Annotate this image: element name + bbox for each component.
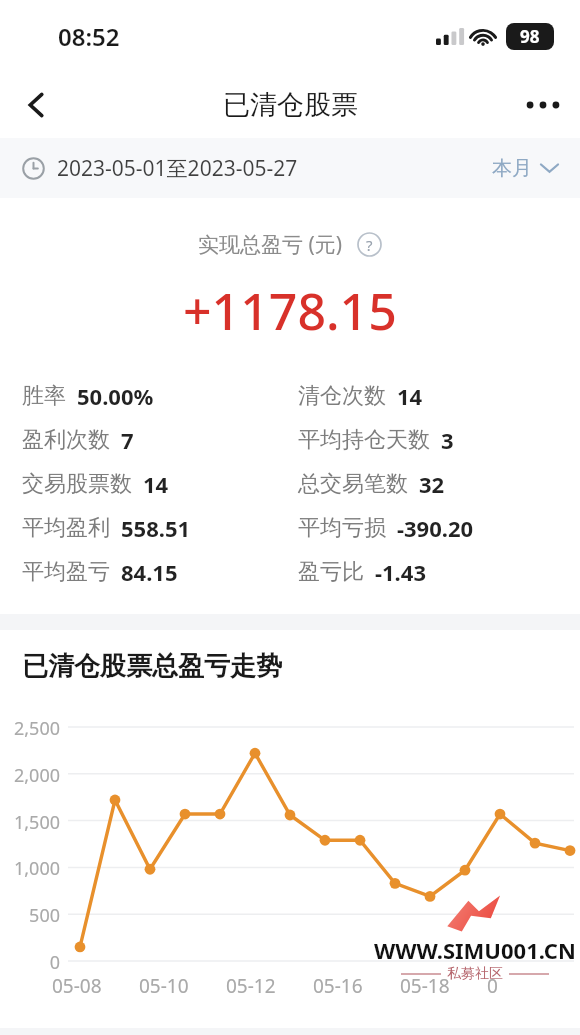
staticText: 已清仓股票 [223,88,358,122]
button[interactable]: Help [356,231,383,258]
staticText: 05-18 [400,973,450,999]
staticText: 05-08 [52,973,102,999]
staticText: WWW.SIMU001.CN [374,935,576,965]
staticText: 14 [143,469,169,499]
staticText: 平均持仓天数 [298,426,430,454]
staticText: 32 [419,469,445,499]
staticText: 清仓次数 [298,382,386,410]
staticText: 本月 [492,156,532,181]
button[interactable]: More options [518,80,568,130]
staticText: 2023-05-01至2023-05-27 [57,154,298,183]
staticText: 50.00% [77,381,154,411]
staticText: 14 [397,381,423,411]
staticText: 2,000 [8,763,60,788]
staticText: 98 [520,25,540,48]
staticText: 已清仓股票总盈亏走势 [22,650,282,683]
staticText: 0 [487,973,498,999]
staticText: 08:52 [58,20,120,53]
button[interactable]: Back [12,80,62,130]
staticText: 05-16 [313,973,363,999]
staticText: 交易股票数 [22,470,132,498]
staticText: 平均盈利 [22,514,110,542]
button[interactable]: 2023-05-01至2023-05-27 [0,138,580,198]
staticText: 盈亏比 [298,558,364,586]
staticText: 3 [441,425,454,455]
staticText: 胜率 [22,382,66,410]
staticText: 实现总盈亏 (元) [198,230,343,259]
staticText: 0 [8,950,60,975]
staticText: 500 [8,903,60,928]
staticText: 盈利次数 [22,426,110,454]
staticText: -1.43 [375,557,426,587]
staticText: 84.15 [121,557,178,587]
staticText: 1,500 [8,810,60,835]
staticText: 私募社区 [447,965,503,983]
staticText: 1,000 [8,856,60,881]
staticText: 05-12 [226,973,276,999]
staticText: -390.20 [397,513,474,543]
staticText: 平均盈亏 [22,558,110,586]
staticText: 总交易笔数 [298,470,408,498]
staticText: +1178.15 [183,277,397,345]
staticText: 05-10 [139,973,189,999]
staticText: 558.51 [121,513,191,543]
staticText: ? [366,235,373,255]
staticText: 平均亏损 [298,514,386,542]
staticText: 2,500 [8,716,60,741]
staticText: 7 [121,425,134,455]
